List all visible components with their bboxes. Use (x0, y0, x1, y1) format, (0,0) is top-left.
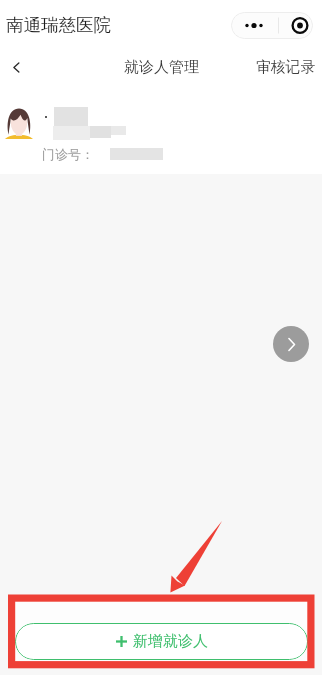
button[interactable]: 审核记录 (256, 58, 322, 77)
button[interactable]: Next (273, 326, 309, 362)
staticText: 就诊人管理 (124, 58, 199, 77)
button[interactable]: 门诊号： (0, 88, 322, 174)
staticText: 南通瑞慈医院 (6, 14, 111, 36)
staticText: 新增就诊人 (133, 632, 208, 651)
button[interactable]: Back (0, 51, 32, 83)
button[interactable]: More options (231, 12, 313, 39)
button[interactable]: 新增就诊人 (15, 623, 308, 660)
staticText: 门诊号： (42, 146, 94, 162)
